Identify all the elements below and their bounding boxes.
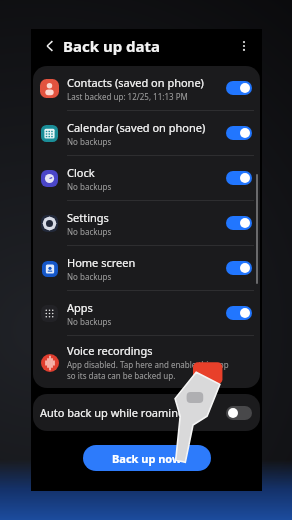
staticText: No backups	[67, 226, 112, 237]
staticText: No backups	[67, 316, 112, 327]
staticText: No backups	[67, 271, 112, 282]
button[interactable]: Contacts (saved on phone)	[33, 66, 260, 110]
staticText: so its data can be backed up.	[67, 370, 176, 381]
staticText: Calendar (saved on phone)	[67, 120, 206, 135]
button[interactable]: Back up now	[83, 445, 211, 471]
button[interactable]: Auto back up while roaming	[33, 394, 260, 431]
staticText: Contacts (saved on phone)	[67, 75, 204, 90]
button[interactable]: Home screen	[33, 246, 260, 290]
button[interactable]: On	[226, 261, 252, 275]
staticText: Home screen	[67, 255, 136, 270]
button[interactable]: On	[226, 171, 252, 185]
button[interactable]: On	[226, 216, 252, 230]
staticText: Back up now	[112, 451, 182, 466]
staticText: Last backed up: 12/25, 11:13 PM	[67, 91, 188, 102]
staticText: Apps	[67, 300, 93, 315]
button[interactable]: Back	[37, 33, 63, 59]
staticText: Voice recordings	[67, 343, 153, 358]
button[interactable]: Off	[226, 406, 252, 420]
button[interactable]: Calendar (saved on phone)	[33, 111, 260, 155]
staticText: Clock	[67, 165, 95, 180]
staticText: App disabled. Tap here and enable this a…	[67, 359, 229, 370]
button[interactable]: Settings	[33, 201, 260, 245]
staticText: Auto back up while roaming	[40, 405, 226, 420]
button[interactable]: Clock	[33, 156, 260, 200]
staticText: Back up data	[63, 36, 160, 56]
staticText: Settings	[67, 210, 109, 225]
button[interactable]: More options	[232, 34, 256, 58]
staticText: No backups	[67, 181, 112, 192]
button[interactable]: On	[226, 81, 252, 95]
button[interactable]: On	[226, 306, 252, 320]
button[interactable]: On	[226, 126, 252, 140]
button[interactable]: Voice recordings	[33, 336, 260, 388]
staticText: No backups	[67, 136, 112, 147]
button[interactable]: Apps	[33, 291, 260, 335]
